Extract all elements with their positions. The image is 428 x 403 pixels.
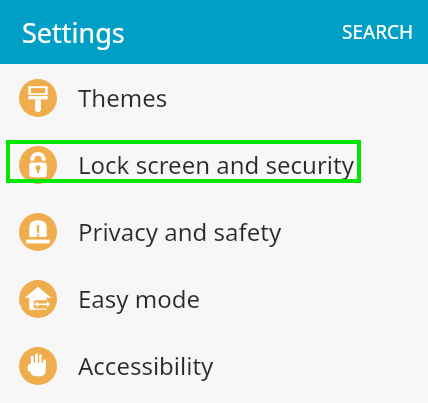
staticText: Easy mode xyxy=(78,282,201,315)
button[interactable]: Lock screen and security xyxy=(0,131,428,198)
button[interactable]: Easy mode xyxy=(0,265,428,332)
staticText: Lock screen and security xyxy=(78,148,354,181)
staticText: Settings xyxy=(22,14,125,51)
button[interactable]: SEARCH xyxy=(328,7,428,57)
staticText: SEARCH xyxy=(342,19,414,45)
button[interactable]: Privacy and safety xyxy=(0,198,428,265)
staticText: Privacy and safety xyxy=(78,215,282,248)
button[interactable]: Accessibility xyxy=(0,332,428,399)
button[interactable]: Themes xyxy=(0,64,428,131)
staticText: Accessibility xyxy=(78,349,214,382)
staticText: Themes xyxy=(78,81,168,114)
